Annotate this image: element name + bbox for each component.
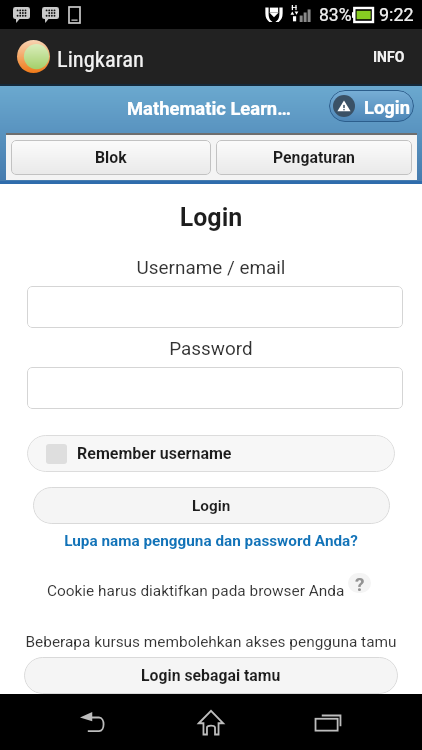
staticText: Password <box>0 337 422 359</box>
button[interactable]: Help <box>348 573 371 593</box>
button[interactable]: Blok <box>11 140 211 175</box>
staticText: Username / email <box>0 256 422 278</box>
staticText: Mathematic Learn… <box>127 98 291 120</box>
button[interactable]: Login <box>33 487 390 524</box>
staticText: Lingkaran <box>57 46 144 72</box>
button[interactable]: Lupa nama pengguna dan password Anda? <box>0 532 422 550</box>
staticText: Login <box>0 203 422 232</box>
button[interactable] <box>27 367 403 409</box>
button[interactable]: Pengaturan <box>216 140 412 175</box>
button[interactable]: INFO <box>362 29 415 85</box>
button[interactable]: Home <box>176 694 246 750</box>
button[interactable] <box>27 286 403 328</box>
staticText: Login <box>192 497 231 515</box>
button[interactable]: Remember username <box>27 435 395 472</box>
staticText: 9:22 <box>379 4 414 25</box>
staticText: Remember username <box>77 444 232 463</box>
staticText: Login <box>364 97 411 119</box>
staticText: Login sebagai tamu <box>141 666 281 685</box>
staticText: ? <box>355 573 365 593</box>
staticText: Blok <box>95 148 127 167</box>
button[interactable]: Back <box>58 694 128 750</box>
button[interactable]: Login <box>329 90 414 122</box>
staticText: Cookie harus diaktifkan pada browser And… <box>47 582 345 600</box>
button[interactable]: Recent apps <box>293 694 363 750</box>
staticText: 83% <box>319 5 352 26</box>
staticText: INFO <box>373 49 405 65</box>
button[interactable]: Login sebagai tamu <box>24 657 398 694</box>
staticText: Beberapa kursus membolehkan akses penggu… <box>0 633 422 651</box>
staticText: Pengaturan <box>273 148 355 167</box>
